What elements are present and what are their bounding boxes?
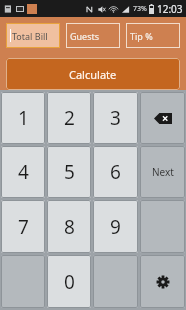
button[interactable]: Total Bill	[6, 23, 60, 48]
button[interactable]: Backspace	[140, 92, 185, 144]
button[interactable]: 1	[1, 92, 45, 144]
button[interactable]: 3	[93, 92, 138, 144]
button[interactable]: Blank key	[1, 255, 45, 308]
staticText: 8	[64, 214, 75, 240]
staticText: Total Bill	[12, 30, 48, 42]
staticText: 3	[110, 105, 121, 131]
button[interactable]: 4	[1, 146, 45, 198]
staticText: 5	[64, 159, 75, 185]
staticText: Guests	[70, 30, 100, 42]
button[interactable]: 9	[93, 200, 138, 253]
button[interactable]: 5	[47, 146, 91, 198]
staticText: 9	[110, 214, 121, 240]
staticText: Calculate	[69, 67, 117, 82]
button[interactable]: Guests	[66, 23, 120, 48]
staticText: 4	[18, 159, 29, 185]
button[interactable]: 6	[93, 146, 138, 198]
staticText: 6	[110, 159, 121, 185]
button[interactable]: Keyboard settings	[140, 255, 185, 308]
staticText: 7	[18, 214, 29, 240]
button[interactable]: Blank key	[140, 200, 185, 253]
staticText: 2	[64, 105, 75, 131]
button[interactable]: 2	[47, 92, 91, 144]
button[interactable]: 8	[47, 200, 91, 253]
staticText: Tip %	[130, 30, 153, 42]
staticText: Next	[152, 165, 174, 179]
staticText: 0	[64, 269, 75, 295]
staticText: 1	[18, 105, 29, 131]
staticText: 73%	[133, 4, 147, 14]
staticText: 12:03	[157, 2, 183, 16]
button[interactable]: 0	[47, 255, 91, 308]
button[interactable]: 7	[1, 200, 45, 253]
button[interactable]: Tip %	[126, 23, 180, 48]
button[interactable]: Next	[140, 146, 185, 198]
button[interactable]: Blank key	[93, 255, 138, 308]
button[interactable]: Calculate	[6, 58, 180, 90]
